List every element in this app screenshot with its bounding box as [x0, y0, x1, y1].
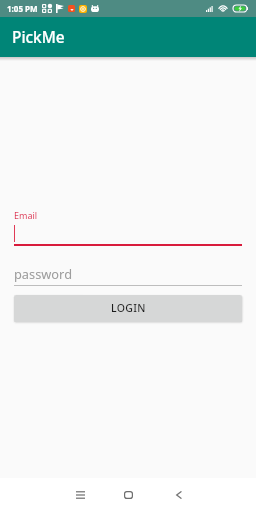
staticText: Email: [14, 209, 38, 221]
button[interactable]: Email: [14, 209, 242, 246]
button[interactable]: Home: [112, 478, 144, 512]
staticText: PickMe: [12, 27, 65, 48]
staticText: password: [14, 265, 73, 282]
staticText: LOGIN: [111, 301, 146, 315]
button[interactable]: LOGIN: [14, 295, 242, 322]
button[interactable]: Back: [162, 478, 194, 512]
button[interactable]: Recent apps: [64, 478, 96, 512]
button[interactable]: password: [14, 264, 242, 286]
staticText: 1:05 PM: [7, 3, 38, 14]
